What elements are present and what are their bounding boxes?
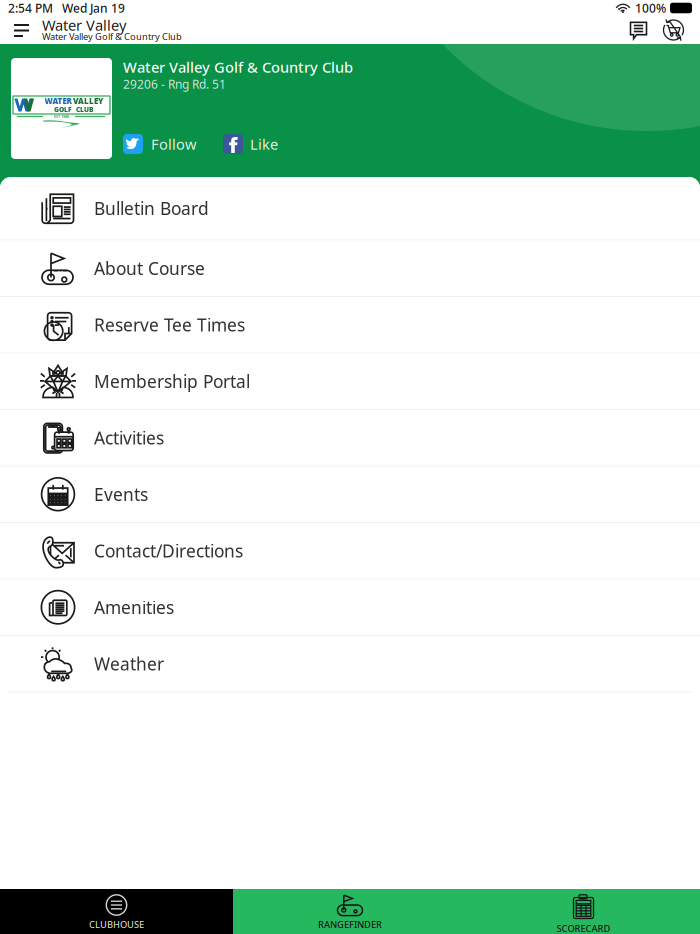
staticText: SCORECARD (556, 922, 610, 934)
staticText: Weather (94, 652, 164, 675)
staticText: Contact/Directions (94, 539, 243, 562)
button[interactable]: Membership Portal (0, 353, 700, 410)
staticText: Membership Portal (94, 370, 250, 393)
staticText: WATER (44, 96, 71, 106)
button[interactable]: Events (0, 466, 700, 523)
staticText: 29206 - Rng Rd. 51 (123, 76, 226, 92)
button[interactable]: About Course (0, 240, 700, 297)
button[interactable]: CLUBHOUSE (0, 889, 233, 934)
staticText: Activities (94, 426, 164, 449)
button[interactable]: Activities (0, 410, 700, 466)
button[interactable]: SCORECARD (467, 889, 700, 934)
staticText: RANGEFINDER (318, 918, 382, 931)
staticText: Events (94, 483, 148, 506)
button[interactable]: Like (223, 134, 278, 154)
button[interactable]: Menu (0, 16, 42, 44)
button[interactable]: Weather (0, 636, 700, 692)
staticText: Amenities (94, 596, 174, 619)
button[interactable]: Bulletin Board (0, 177, 700, 240)
button[interactable]: Amenities (0, 579, 700, 636)
staticText: Water Valley Golf & Country Club (123, 57, 353, 77)
staticText: Water Valley Golf & Country Club (42, 30, 182, 43)
button[interactable]: Reserve Tee Times (0, 297, 700, 353)
staticText: Water Valley (42, 15, 126, 35)
staticText: Follow (151, 134, 197, 154)
button[interactable]: Contact/Directions (0, 523, 700, 579)
staticText: Bulletin Board (94, 197, 209, 220)
button[interactable]: Messages (622, 16, 655, 43)
staticText: 100% (635, 0, 666, 16)
staticText: 2:54 PM (8, 0, 53, 16)
staticText: Like (250, 134, 278, 154)
button[interactable]: Follow (123, 134, 197, 154)
staticText: Reserve Tee Times (94, 313, 245, 336)
button[interactable]: Cart (657, 16, 690, 43)
staticText: GOLF CLUB (54, 105, 93, 114)
staticText: About Course (94, 257, 205, 280)
button[interactable]: RANGEFINDER (233, 889, 467, 934)
staticText: EST 1988 (54, 114, 69, 119)
staticText: Wed Jan 19 (62, 0, 125, 16)
staticText: VALLEY (73, 96, 103, 106)
staticText: CLUBHOUSE (89, 918, 144, 931)
